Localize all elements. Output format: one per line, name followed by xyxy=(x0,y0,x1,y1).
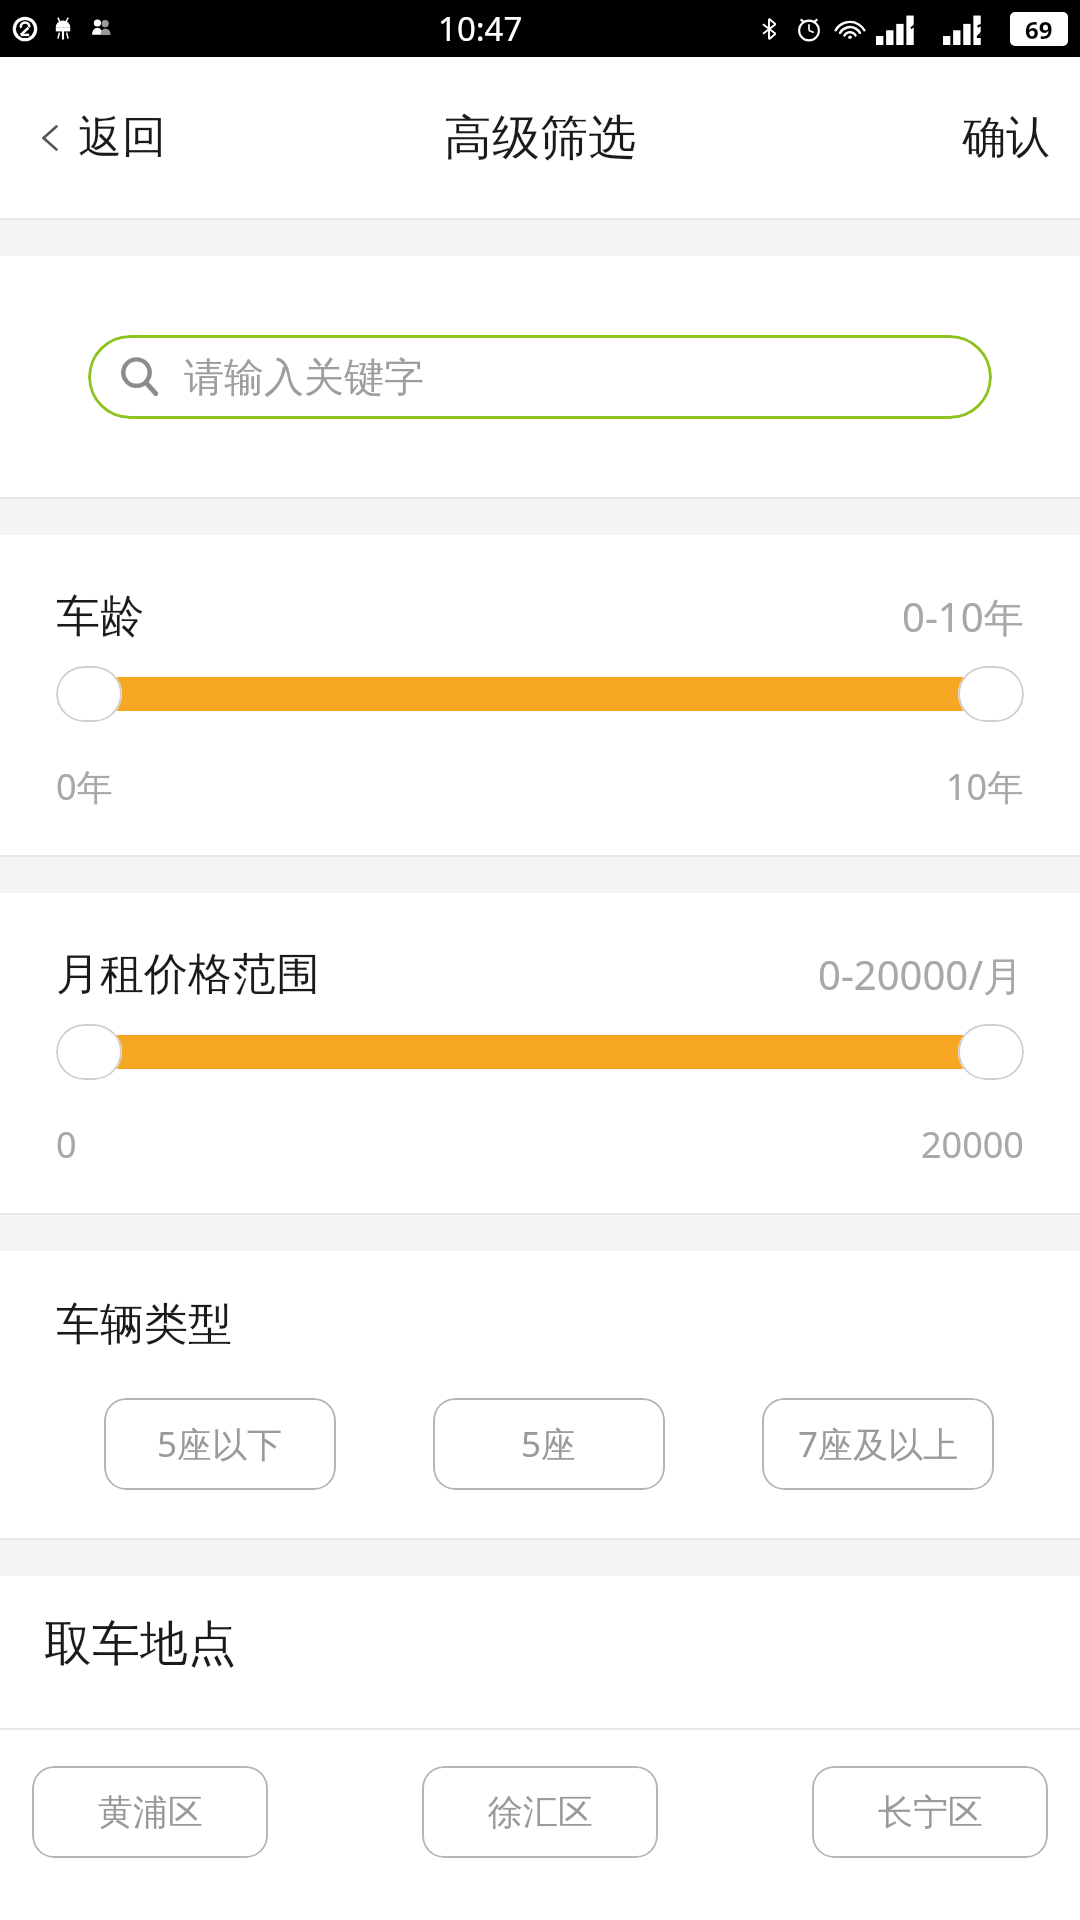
staticText: 车龄 xyxy=(56,589,144,644)
staticText: 0-20000/月 xyxy=(818,947,1024,1002)
staticText: 高级筛选 xyxy=(444,108,636,168)
staticText: 黄浦区 xyxy=(98,1790,203,1834)
staticText: 返回 xyxy=(78,110,166,165)
staticText: 0-10年 xyxy=(902,589,1024,644)
staticText: 7座及以上 xyxy=(798,1420,959,1468)
button[interactable]: 返回 xyxy=(34,110,166,165)
staticText: 69 xyxy=(1025,13,1053,46)
button[interactable]: Maximum 10年 xyxy=(958,666,1024,722)
staticText: 20000 xyxy=(921,1120,1024,1169)
staticText: 10年 xyxy=(946,762,1024,811)
staticText: 徐汇区 xyxy=(488,1790,593,1834)
button[interactable]: 黄浦区 xyxy=(32,1766,268,1858)
button[interactable]: 5座 xyxy=(433,1398,665,1490)
staticText: 5座以下 xyxy=(157,1420,283,1468)
staticText: 2 xyxy=(976,18,987,44)
staticText: 0 xyxy=(56,1120,77,1169)
staticText: 车辆类型 xyxy=(56,1297,232,1352)
staticText: 确认 xyxy=(962,110,1050,165)
button[interactable]: Minimum 0 xyxy=(56,1024,122,1080)
button[interactable]: 7座及以上 xyxy=(762,1398,994,1490)
staticText: 5座 xyxy=(521,1420,577,1468)
staticText: 请输入关键字 xyxy=(184,352,424,402)
staticText: 月租价格范围 xyxy=(56,947,320,1002)
button[interactable]: 长宁区 xyxy=(812,1766,1048,1858)
staticText: 0年 xyxy=(56,762,113,811)
button[interactable]: 确认 xyxy=(962,110,1050,165)
button[interactable]: 5座以下 xyxy=(104,1398,336,1490)
button[interactable]: Minimum 0年 xyxy=(56,666,122,722)
button[interactable]: 请输入关键字 xyxy=(88,335,992,419)
staticText: 长宁区 xyxy=(878,1790,983,1834)
staticText: 10:47 xyxy=(438,6,523,51)
staticText: 取车地点 xyxy=(44,1614,236,1674)
staticText: 1 xyxy=(909,18,920,44)
button[interactable]: Maximum 20000 xyxy=(958,1024,1024,1080)
button[interactable]: 徐汇区 xyxy=(422,1766,658,1858)
